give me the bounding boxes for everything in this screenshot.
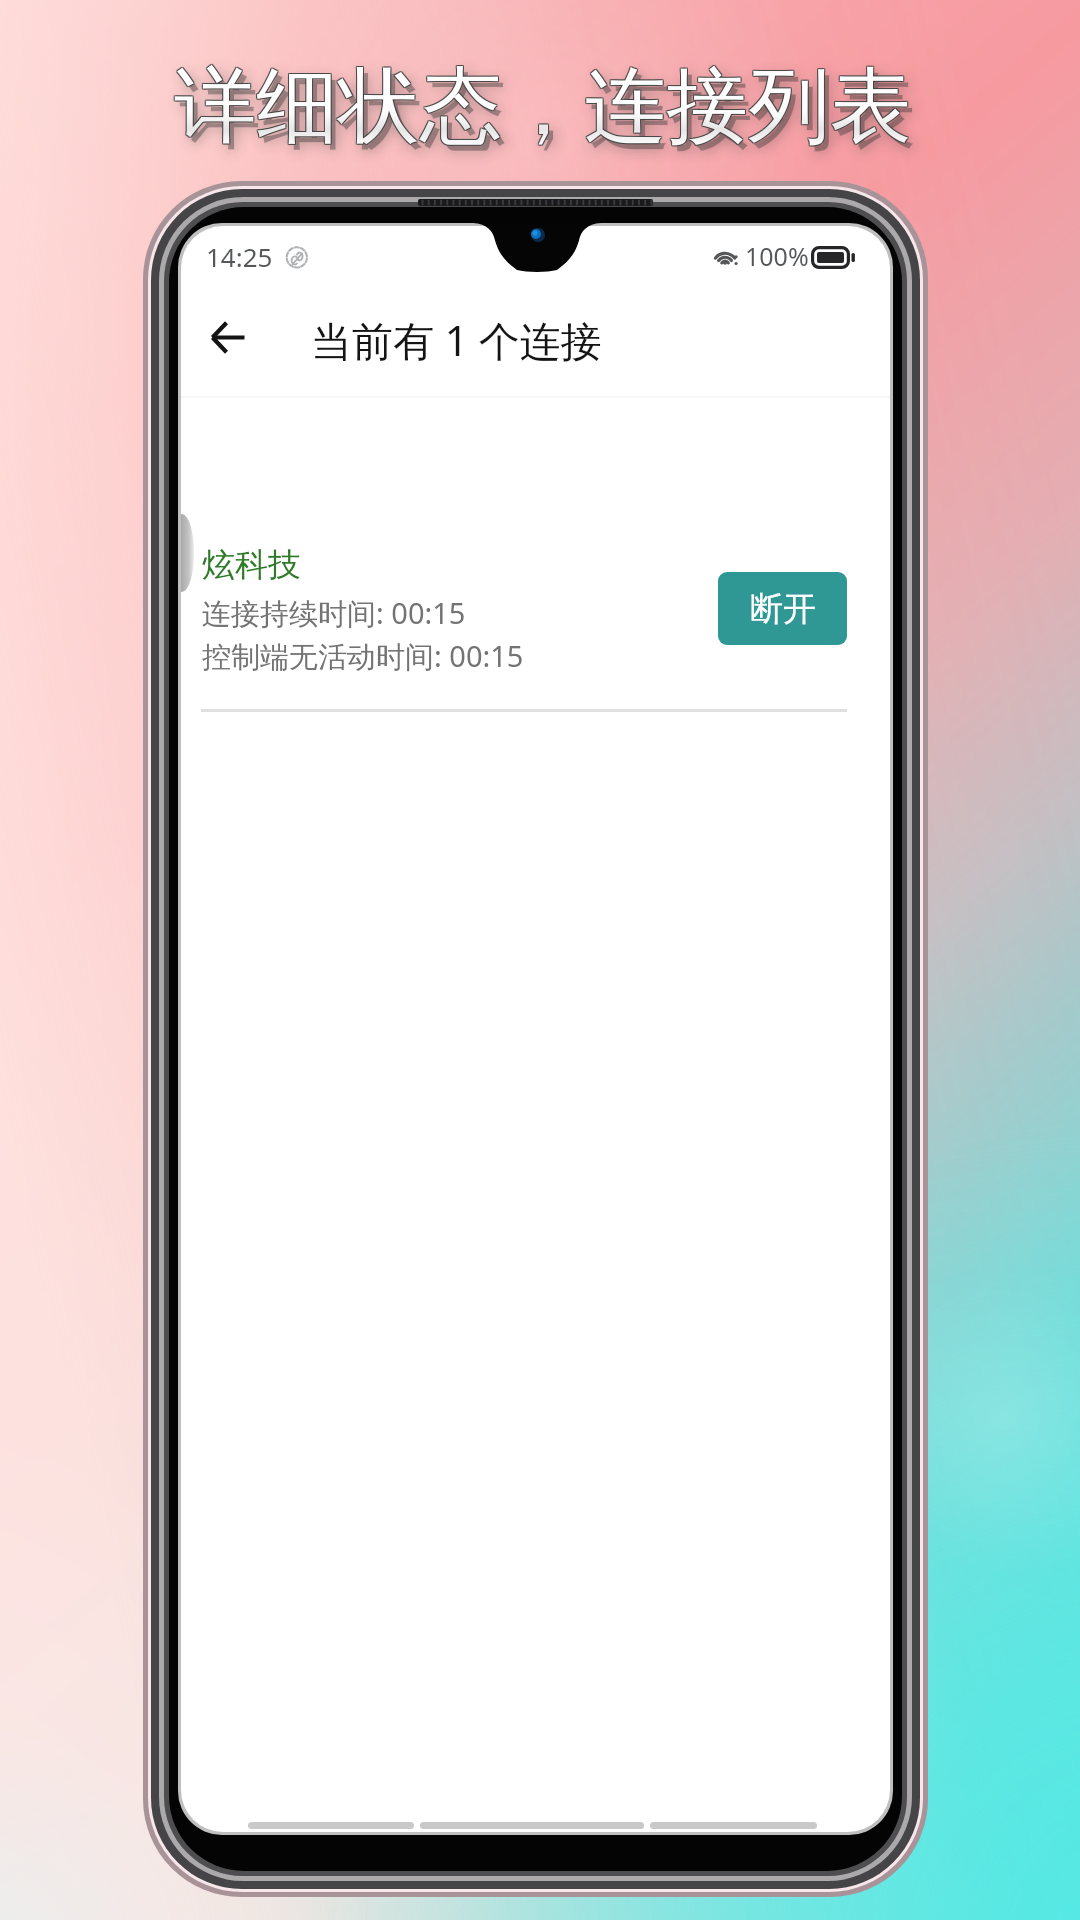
button[interactable]: 炫科技 [181, 529, 890, 707]
button[interactable]: Recents [650, 1822, 817, 1829]
staticText: 详细状态，连接列表 [174, 56, 912, 159]
staticText: 断开 [750, 588, 816, 630]
button[interactable]: Back [181, 291, 275, 383]
staticText: 详细状态，连接列表 [175, 55, 913, 158]
staticText: 详细状态，连接列表 [175, 54, 913, 157]
staticText: 详细状态，连接列表 [173, 55, 911, 158]
staticText: 100% [745, 239, 809, 273]
button[interactable]: 断开 [718, 572, 847, 645]
staticText: 详细状态，连接列表 [175, 56, 913, 159]
staticText: 详细状态，连接列表 [174, 54, 912, 157]
staticText: 详细状态，连接列表 [173, 54, 911, 157]
button[interactable]: Back [248, 1822, 414, 1829]
staticText: 详细状态，连接列表 [179, 61, 917, 164]
staticText: 当前有 1 个连接 [311, 312, 602, 368]
staticText: 炫科技 [202, 544, 301, 586]
staticText: 连接持续时间: 00:15 [202, 593, 466, 633]
staticText: 14:25 [206, 239, 273, 274]
staticText: 详细状态，连接列表 [173, 56, 911, 159]
staticText: 详细状态，连接列表 [174, 55, 912, 158]
staticText: 控制端无活动时间: 00:15 [202, 636, 524, 676]
button[interactable]: Home [420, 1822, 644, 1829]
